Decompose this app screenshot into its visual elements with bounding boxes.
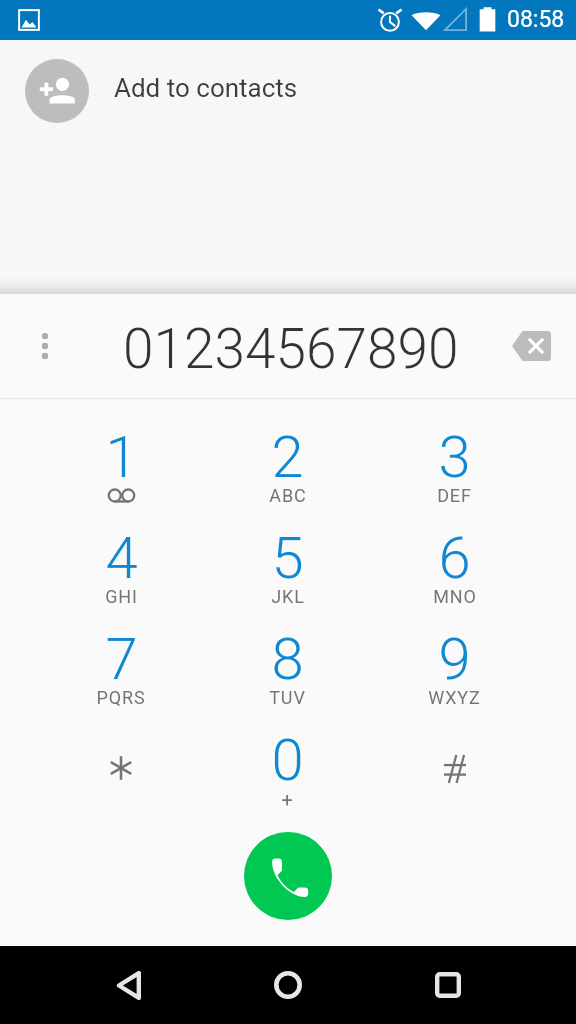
button[interactable]: 4 <box>38 516 204 617</box>
button[interactable] <box>38 718 204 819</box>
staticText: WXYZ <box>428 687 481 708</box>
button[interactable]: More options <box>0 294 89 398</box>
button[interactable]: 5 <box>204 516 371 617</box>
button[interactable]: Home <box>248 946 328 1024</box>
button[interactable]: 8 <box>204 617 371 718</box>
staticText: 5 <box>271 524 304 592</box>
staticText: PQRS <box>96 687 146 708</box>
button[interactable]: Add to contacts <box>0 40 576 140</box>
staticText: 0 <box>271 726 304 794</box>
button[interactable]: 2 <box>204 415 371 516</box>
button[interactable]: 0 <box>204 718 371 819</box>
button[interactable]: 6 <box>371 516 538 617</box>
button[interactable]: 7 <box>38 617 204 718</box>
staticText: 3 <box>438 423 471 491</box>
staticText: TUV <box>269 687 306 708</box>
button[interactable]: Call <box>244 832 332 920</box>
staticText: 1 <box>105 423 138 491</box>
button[interactable] <box>371 718 538 819</box>
staticText: 08:58 <box>507 6 565 33</box>
staticText: JKL <box>271 586 305 607</box>
staticText: ABC <box>269 485 307 506</box>
staticText: Add to contacts <box>114 73 298 103</box>
staticText: + <box>281 788 294 811</box>
staticText: 7 <box>105 625 138 693</box>
staticText: 01234567890 <box>123 317 459 381</box>
button[interactable]: 1 <box>38 415 204 516</box>
staticText: MNO <box>433 586 477 607</box>
staticText: 2 <box>271 423 304 491</box>
staticText: 4 <box>105 524 138 592</box>
button[interactable]: 9 <box>371 617 538 718</box>
button[interactable]: Recents <box>408 946 488 1024</box>
button[interactable]: 3 <box>371 415 538 516</box>
staticText: 6 <box>438 524 471 592</box>
staticText: GHI <box>105 586 138 607</box>
button[interactable]: Backspace <box>487 294 576 398</box>
staticText: 9 <box>438 625 471 693</box>
staticText: 8 <box>271 625 304 693</box>
button[interactable]: Back <box>88 946 168 1024</box>
staticText: DEF <box>437 485 472 506</box>
